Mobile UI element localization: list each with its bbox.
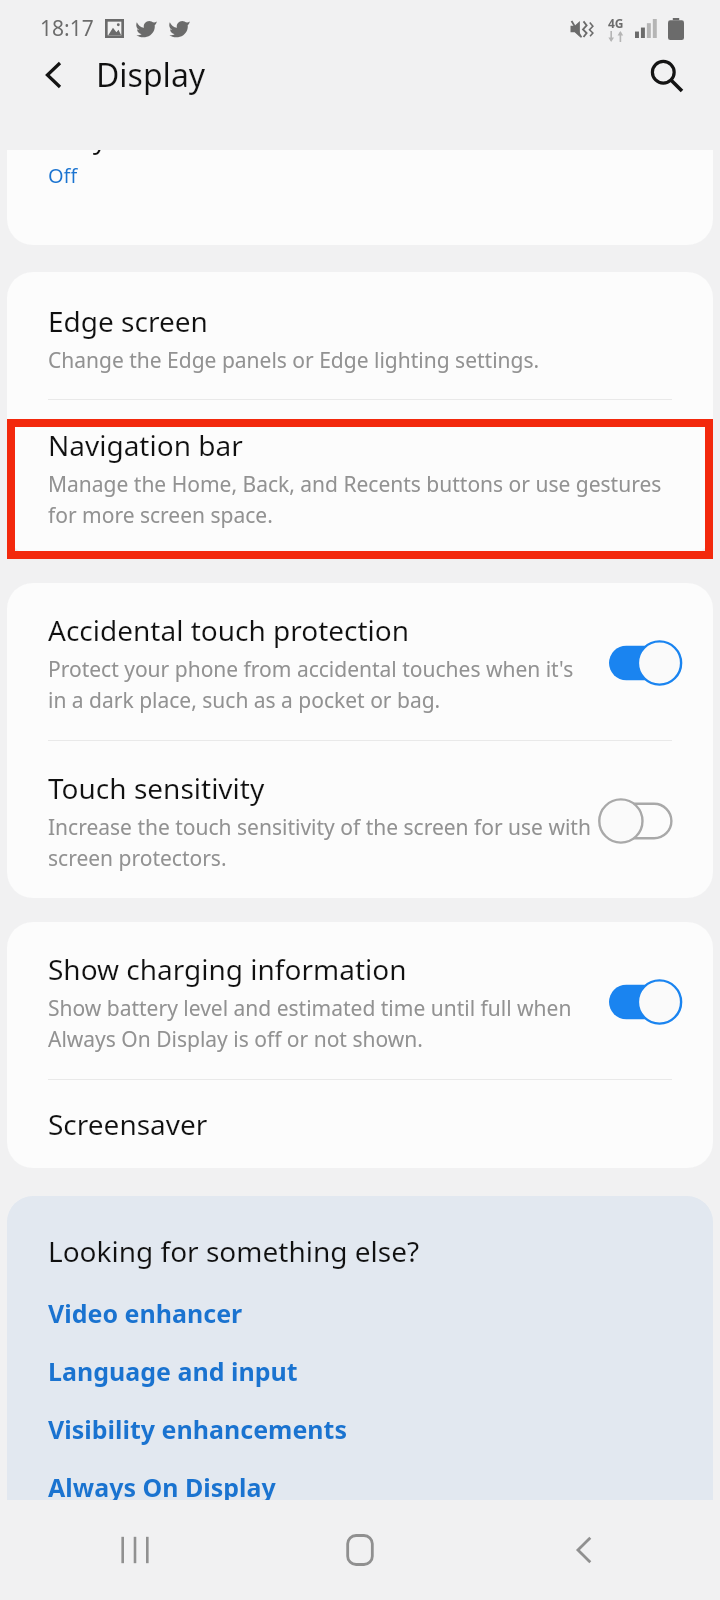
- button[interactable]: Easy mode: [7, 150, 713, 245]
- staticText: Protect your phone from accidental touch…: [48, 655, 591, 714]
- staticText: Show battery level and estimated time un…: [48, 994, 591, 1053]
- button[interactable]: Search: [634, 43, 698, 107]
- staticText: Touch sensitivity: [48, 769, 265, 807]
- button[interactable]: Accidental touch protection: [7, 583, 713, 740]
- staticText: 18:17: [40, 14, 94, 43]
- button[interactable]: Screensaver: [7, 1080, 713, 1168]
- staticText: Looking for something else?: [48, 1232, 420, 1270]
- staticText: Display: [96, 53, 206, 97]
- staticText: Visibility enhancements: [48, 1412, 348, 1446]
- button[interactable]: On: [609, 639, 687, 687]
- staticText: Easy mode: [48, 150, 191, 156]
- staticText: Edge screen: [48, 302, 208, 340]
- staticText: Accidental touch protection: [48, 611, 410, 649]
- button[interactable]: Visibility enhancements: [7, 1400, 713, 1458]
- button[interactable]: On: [609, 978, 687, 1026]
- button[interactable]: Recents: [45, 1500, 225, 1600]
- staticText: Screensaver: [48, 1105, 208, 1143]
- button[interactable]: Show charging information: [7, 922, 713, 1079]
- staticText: Always On Display: [48, 1470, 276, 1504]
- button[interactable]: Back: [495, 1500, 675, 1600]
- staticText: Video enhancer: [48, 1296, 243, 1330]
- staticText: Off: [48, 162, 78, 189]
- staticText: Navigation bar: [48, 426, 243, 464]
- button[interactable]: Home: [270, 1500, 450, 1600]
- button[interactable]: Back: [22, 43, 86, 107]
- staticText: Change the Edge panels or Edge lighting …: [48, 346, 540, 375]
- staticText: Manage the Home, Back, and Recents butto…: [48, 470, 671, 529]
- staticText: Increase the touch sensitivity of the sc…: [48, 813, 591, 872]
- staticText: Show charging information: [48, 950, 407, 988]
- button[interactable]: Video enhancer: [7, 1284, 713, 1342]
- button[interactable]: Navigation bar: [7, 400, 713, 555]
- button[interactable]: Edge screen: [7, 272, 713, 399]
- button[interactable]: Always On Display: [7, 1458, 713, 1516]
- button[interactable]: Touch sensitivity: [7, 741, 713, 898]
- button[interactable]: Off: [609, 797, 687, 845]
- staticText: 4G: [608, 15, 624, 31]
- button[interactable]: Language and input: [7, 1342, 713, 1400]
- staticText: Language and input: [48, 1354, 298, 1388]
